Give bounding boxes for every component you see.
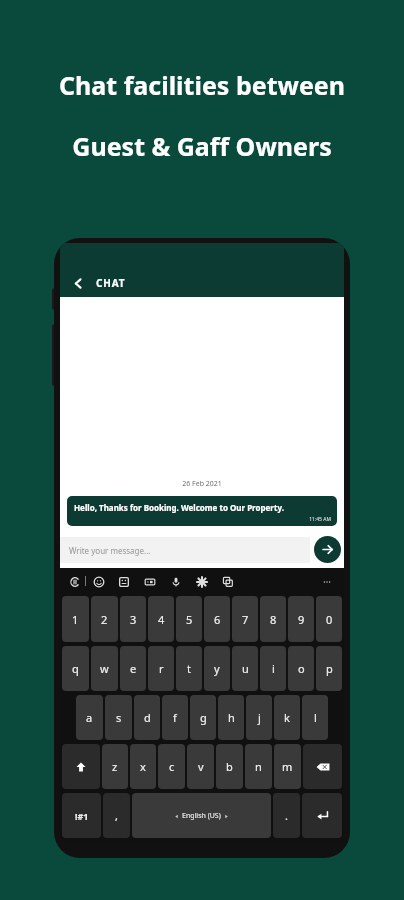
button[interactable]: p bbox=[316, 646, 342, 691]
button[interactable]: Shift bbox=[62, 744, 100, 789]
button[interactable]: t bbox=[176, 646, 202, 691]
staticText: p bbox=[326, 661, 333, 676]
button[interactable]: Write your message... bbox=[60, 537, 310, 563]
staticText: y bbox=[214, 661, 220, 676]
staticText: j bbox=[258, 710, 261, 725]
staticText: e bbox=[130, 661, 137, 676]
button[interactable]: o bbox=[288, 646, 314, 691]
button[interactable]: Space bbox=[132, 793, 271, 838]
button[interactable]: Clipboard history bbox=[220, 574, 235, 589]
staticText: 7 bbox=[242, 612, 249, 627]
staticText: Chat facilities between bbox=[59, 68, 345, 102]
staticText: Hello, Thanks for Booking. Welcome to Ou… bbox=[74, 502, 284, 513]
button[interactable]: m bbox=[274, 744, 301, 789]
button[interactable]: g bbox=[190, 695, 216, 740]
staticText: 5 bbox=[186, 612, 193, 627]
staticText: CHAT bbox=[96, 276, 126, 290]
button[interactable]: x bbox=[130, 744, 156, 789]
staticText: b bbox=[226, 759, 233, 774]
staticText: w bbox=[100, 661, 109, 676]
button[interactable]: Send bbox=[314, 536, 341, 563]
button[interactable]: r bbox=[148, 646, 174, 691]
staticText: o bbox=[298, 661, 305, 676]
button[interactable]: 4 bbox=[148, 596, 174, 642]
button[interactable]: Clipboard bbox=[67, 574, 82, 589]
button[interactable]: z bbox=[102, 744, 128, 789]
staticText: 26 Feb 2021 bbox=[60, 479, 344, 489]
staticText: r bbox=[159, 661, 164, 676]
staticText: c bbox=[169, 759, 175, 774]
staticText: 3 bbox=[130, 612, 137, 627]
button[interactable]: h bbox=[218, 695, 244, 740]
button[interactable]: c bbox=[158, 744, 185, 789]
button[interactable]: 3 bbox=[120, 596, 146, 642]
button[interactable]: Hello, Thanks for Booking. Welcome to Ou… bbox=[67, 496, 337, 526]
staticText: , bbox=[115, 808, 118, 823]
button[interactable]: Emoji bbox=[91, 574, 106, 589]
button[interactable]: 1 bbox=[62, 596, 89, 642]
button[interactable]: b bbox=[216, 744, 243, 789]
button[interactable]: j bbox=[246, 695, 272, 740]
staticText: Guest & Gaff Owners bbox=[72, 129, 332, 163]
button[interactable]: q bbox=[62, 646, 89, 691]
staticText: Write your message... bbox=[69, 545, 151, 556]
staticText: d bbox=[144, 710, 151, 725]
button[interactable]: v bbox=[187, 744, 214, 789]
staticText: s bbox=[116, 710, 122, 725]
button[interactable]: k bbox=[274, 695, 300, 740]
staticText: !#1 bbox=[75, 810, 89, 822]
staticText: i bbox=[272, 661, 275, 676]
staticText: l bbox=[314, 710, 317, 725]
staticText: h bbox=[228, 710, 235, 725]
staticText: 0 bbox=[326, 612, 333, 627]
button[interactable]: Keyboard settings bbox=[194, 574, 209, 589]
button[interactable]: y bbox=[204, 646, 230, 691]
button[interactable]: s bbox=[105, 695, 132, 740]
button[interactable]: !#1 bbox=[62, 793, 101, 838]
staticText: z bbox=[112, 759, 118, 774]
button[interactable]: 9 bbox=[288, 596, 314, 642]
staticText: k bbox=[284, 710, 290, 725]
button[interactable]: l bbox=[302, 695, 328, 740]
button[interactable]: Voice input bbox=[168, 574, 183, 589]
staticText: m bbox=[282, 759, 293, 774]
button[interactable]: 6 bbox=[204, 596, 230, 642]
button[interactable]: w bbox=[91, 646, 118, 691]
button[interactable]: e bbox=[120, 646, 146, 691]
staticText: u bbox=[242, 661, 249, 676]
staticText: x bbox=[140, 759, 146, 774]
button[interactable]: Stickers bbox=[116, 574, 131, 589]
button[interactable]: i bbox=[260, 646, 286, 691]
button[interactable]: Backspace bbox=[303, 744, 342, 789]
button[interactable]: . bbox=[273, 793, 300, 838]
button[interactable]: 8 bbox=[260, 596, 286, 642]
staticText: 8 bbox=[270, 612, 277, 627]
button[interactable]: n bbox=[245, 744, 272, 789]
button[interactable]: d bbox=[134, 695, 160, 740]
staticText: f bbox=[173, 710, 177, 725]
staticText: 1 bbox=[72, 612, 79, 627]
staticText: t bbox=[187, 661, 191, 676]
staticText: 11:45 AM bbox=[74, 516, 331, 523]
button[interactable]: Back bbox=[68, 273, 88, 293]
button[interactable]: 0 bbox=[316, 596, 342, 642]
button[interactable]: 2 bbox=[91, 596, 118, 642]
button[interactable]: Enter bbox=[302, 793, 342, 838]
staticText: q bbox=[72, 661, 79, 676]
staticText: n bbox=[255, 759, 262, 774]
staticText: 6 bbox=[214, 612, 221, 627]
staticText: English (US) bbox=[182, 811, 221, 821]
button[interactable]: u bbox=[232, 646, 258, 691]
button[interactable]: 7 bbox=[232, 596, 258, 642]
button[interactable]: f bbox=[162, 695, 188, 740]
button[interactable]: GIF bbox=[142, 574, 157, 589]
staticText: 9 bbox=[298, 612, 305, 627]
button[interactable]: , bbox=[103, 793, 130, 838]
staticText: a bbox=[86, 710, 93, 725]
button[interactable]: More options bbox=[319, 574, 334, 589]
staticText: 4 bbox=[158, 612, 165, 627]
staticText: 2 bbox=[101, 612, 108, 627]
staticText: g bbox=[200, 710, 207, 725]
button[interactable]: a bbox=[76, 695, 103, 740]
button[interactable]: 5 bbox=[176, 596, 202, 642]
